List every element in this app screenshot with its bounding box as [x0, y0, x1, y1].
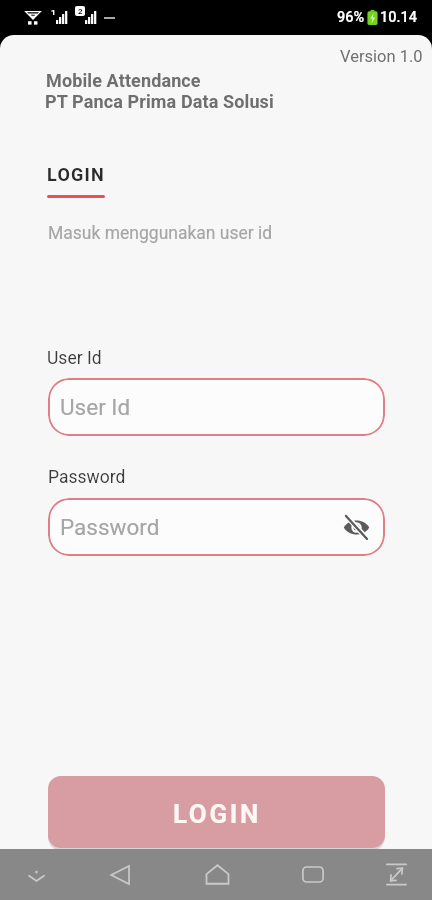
- button[interactable]: LOGIN: [48, 776, 385, 848]
- staticText: LOGIN: [47, 164, 106, 185]
- staticText: PT Panca Prima Data Solusi: [45, 91, 274, 112]
- staticText: 1: [51, 8, 56, 17]
- button[interactable]: Password: [48, 498, 385, 556]
- staticText: 2: [78, 7, 83, 16]
- button[interactable]: Show password: [341, 512, 371, 542]
- staticText: User Id: [47, 348, 102, 369]
- button[interactable]: Back: [90, 849, 150, 900]
- button[interactable]: User Id: [48, 378, 385, 436]
- button[interactable]: Home: [187, 849, 247, 900]
- button[interactable]: Recents: [283, 849, 343, 900]
- button[interactable]: Hide keyboard: [6, 849, 66, 900]
- button[interactable]: Full screen: [366, 849, 426, 900]
- staticText: 10.14: [380, 9, 417, 26]
- staticText: Password: [60, 514, 160, 540]
- staticText: LOGIN: [173, 799, 261, 829]
- staticText: Password: [48, 467, 126, 488]
- staticText: Version 1.0: [340, 47, 423, 66]
- staticText: 96%: [337, 9, 365, 26]
- staticText: Masuk menggunakan user id: [48, 223, 273, 244]
- staticText: Mobile Attendance: [46, 70, 201, 91]
- staticText: User Id: [60, 394, 131, 420]
